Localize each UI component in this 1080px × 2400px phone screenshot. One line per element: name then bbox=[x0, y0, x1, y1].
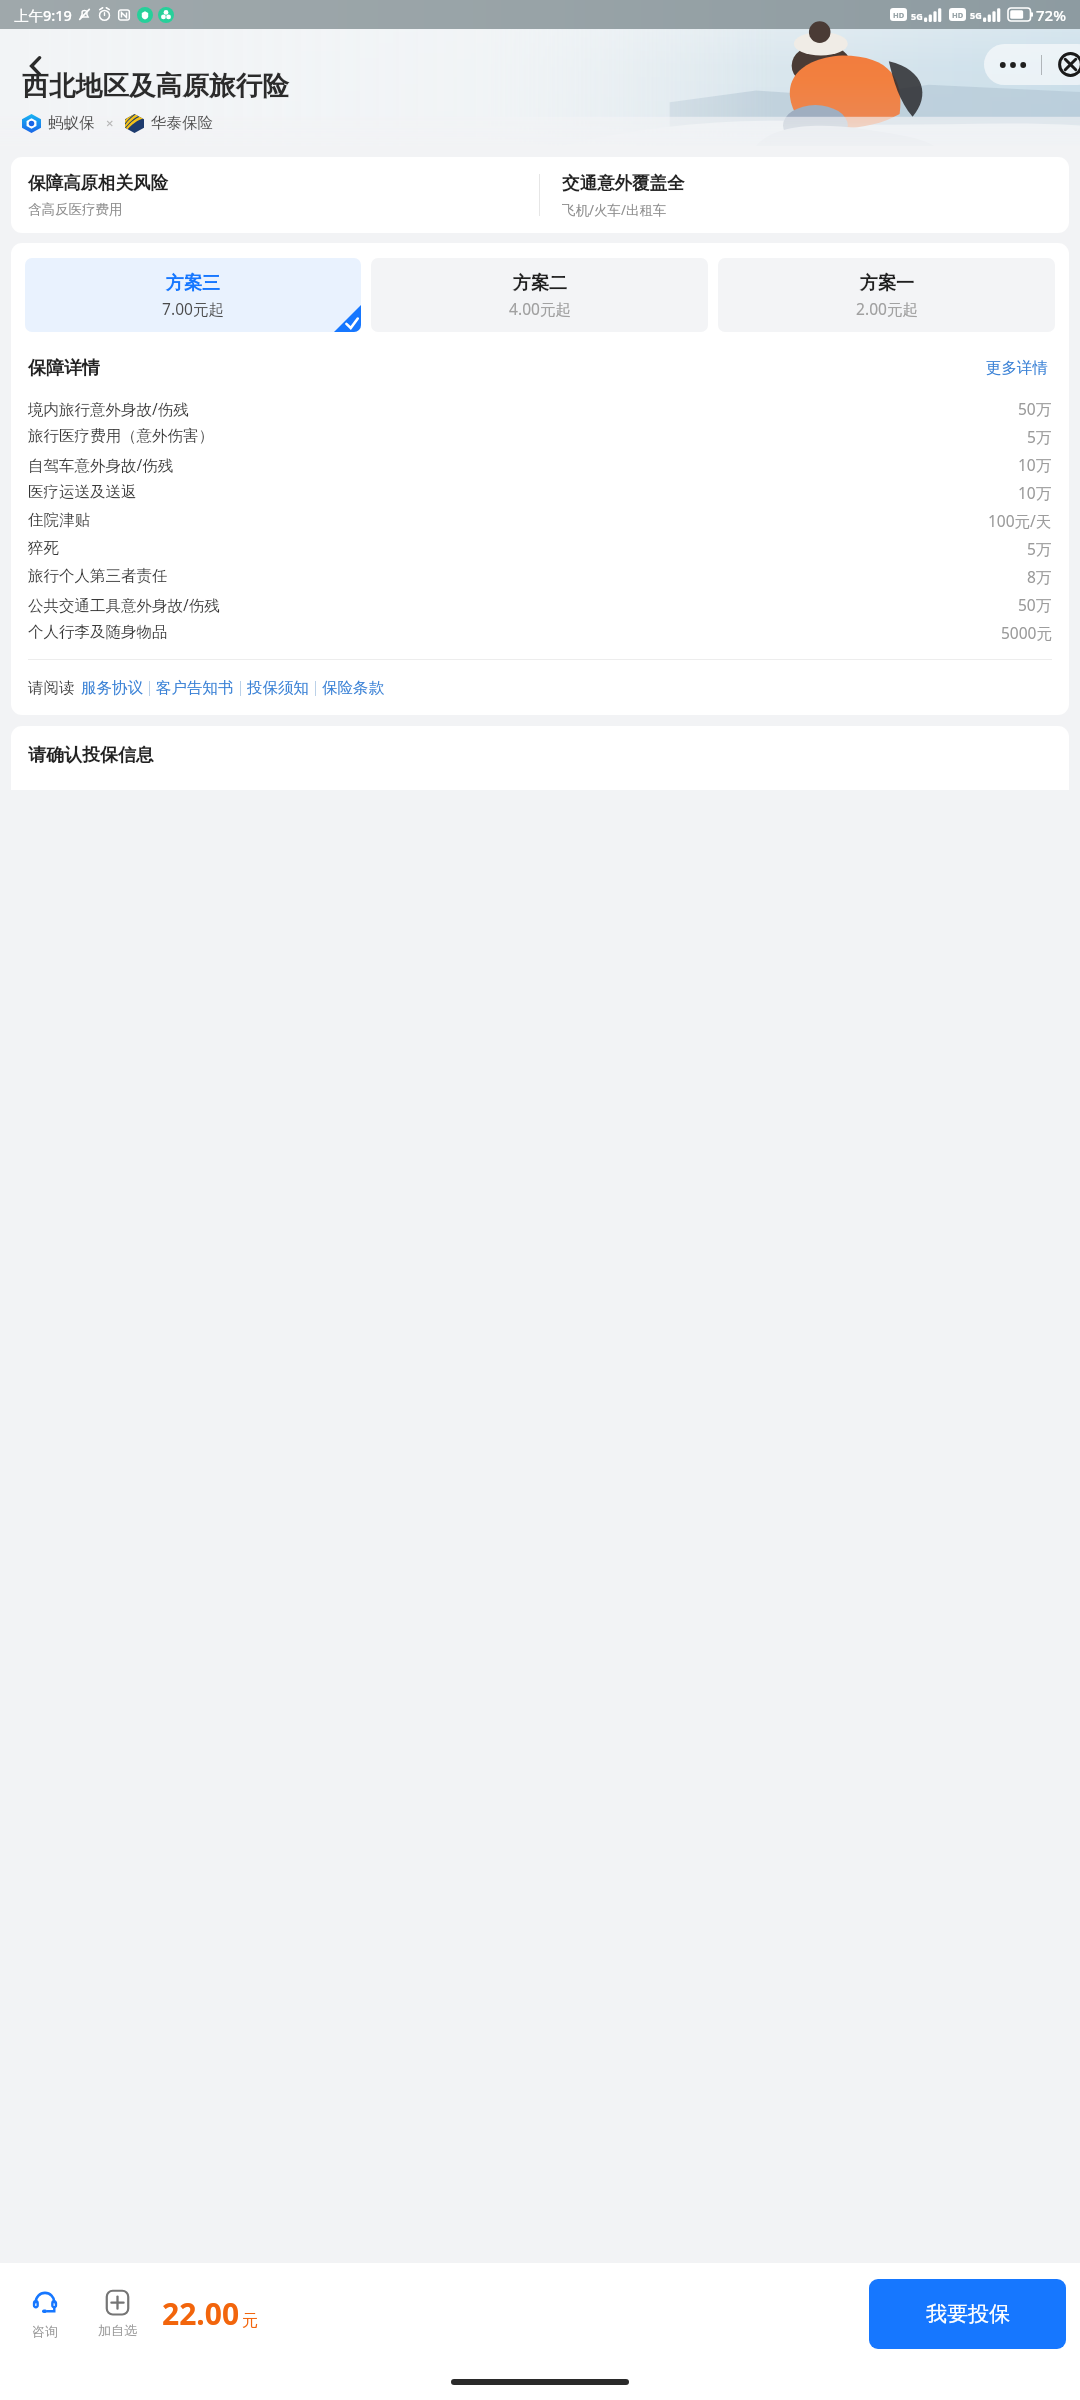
staticText: 交通意外覆盖全 bbox=[562, 172, 685, 194]
staticText: 医疗运送及送返 bbox=[28, 482, 137, 502]
button[interactable]: 方案三 bbox=[25, 258, 361, 332]
staticText: 方案二 bbox=[513, 272, 567, 295]
staticText: 住院津贴 bbox=[28, 510, 90, 530]
staticText: 保障详情 bbox=[28, 357, 100, 380]
staticText: 客户告知书 bbox=[156, 678, 234, 698]
button[interactable]: Close bbox=[1042, 44, 1080, 85]
staticText: 上午9:19 bbox=[14, 5, 72, 25]
staticText: 5G bbox=[970, 9, 982, 21]
staticText: 旅行医疗费用（意外伤害） bbox=[28, 426, 214, 446]
staticText: 华泰保险 bbox=[151, 113, 213, 133]
button[interactable]: 我要投保 bbox=[869, 2279, 1066, 2349]
button[interactable]: 客户告知书 bbox=[156, 678, 234, 698]
staticText: 4.00元起 bbox=[509, 298, 571, 319]
staticText: 蚂蚁保 bbox=[48, 113, 95, 133]
staticText: 我要投保 bbox=[926, 2301, 1010, 2327]
staticText: 10万 bbox=[1018, 454, 1052, 475]
staticText: 投保须知 bbox=[247, 678, 309, 698]
staticText: 50万 bbox=[1018, 594, 1052, 615]
button[interactable]: 旅行医疗费用（意外伤害） bbox=[28, 422, 1052, 450]
staticText: 境内旅行意外身故/伤残 bbox=[28, 398, 189, 419]
button[interactable]: 更多详情 bbox=[982, 354, 1052, 382]
staticText: 西北地区及高原旅行险 bbox=[22, 69, 289, 102]
staticText: 100元/天 bbox=[988, 510, 1052, 531]
staticText: 5万 bbox=[1027, 426, 1052, 447]
staticText: 含高反医疗费用 bbox=[28, 201, 123, 218]
staticText: 自驾车意外身故/伤残 bbox=[28, 454, 174, 475]
staticText: 22.00 bbox=[162, 2293, 240, 2334]
button[interactable]: 自驾车意外身故/伤残 bbox=[28, 450, 1052, 478]
button[interactable]: 保险条款 bbox=[322, 678, 384, 698]
staticText: 2.00元起 bbox=[856, 298, 918, 319]
button[interactable]: 咨询 bbox=[14, 2263, 76, 2364]
staticText: 元 bbox=[242, 2311, 258, 2331]
staticText: 方案三 bbox=[166, 272, 220, 295]
staticText: 咨询 bbox=[32, 2323, 58, 2339]
button[interactable]: More options bbox=[984, 44, 1041, 85]
staticText: 72% bbox=[1036, 5, 1066, 25]
staticText: 个人行李及随身物品 bbox=[28, 622, 168, 642]
staticText: 7.00元起 bbox=[162, 298, 224, 319]
staticText: × bbox=[106, 114, 114, 132]
button[interactable]: 加自选 bbox=[86, 2263, 148, 2364]
button[interactable]: 境内旅行意外身故/伤残 bbox=[28, 394, 1052, 422]
staticText: HD bbox=[952, 10, 964, 20]
staticText: 请确认投保信息 bbox=[28, 744, 154, 767]
button[interactable]: 方案一 bbox=[718, 258, 1055, 332]
staticText: 加自选 bbox=[98, 2322, 137, 2338]
button[interactable]: 公共交通工具意外身故/伤残 bbox=[28, 590, 1052, 618]
staticText: 请阅读 bbox=[28, 678, 75, 698]
button[interactable]: 旅行个人第三者责任 bbox=[28, 562, 1052, 590]
staticText: 5万 bbox=[1027, 538, 1052, 559]
staticText: 5000元 bbox=[1001, 622, 1052, 643]
staticText: 50万 bbox=[1018, 398, 1052, 419]
staticText: 8万 bbox=[1027, 566, 1052, 587]
staticText: 更多详情 bbox=[986, 358, 1048, 378]
button[interactable]: 投保须知 bbox=[247, 678, 309, 698]
staticText: 猝死 bbox=[28, 538, 59, 558]
staticText: 保险条款 bbox=[322, 678, 384, 698]
staticText: 公共交通工具意外身故/伤残 bbox=[28, 594, 220, 615]
button[interactable]: 方案二 bbox=[371, 258, 708, 332]
staticText: 保障高原相关风险 bbox=[28, 172, 168, 194]
button[interactable]: 个人行李及随身物品 bbox=[28, 618, 1052, 646]
button[interactable]: 医疗运送及送返 bbox=[28, 478, 1052, 506]
staticText: 5G bbox=[911, 10, 923, 22]
staticText: 旅行个人第三者责任 bbox=[28, 566, 168, 586]
button[interactable]: 住院津贴 bbox=[28, 506, 1052, 534]
button[interactable]: Back bbox=[14, 44, 58, 88]
button[interactable]: 猝死 bbox=[28, 534, 1052, 562]
staticText: 10万 bbox=[1018, 482, 1052, 503]
button[interactable]: 服务协议 bbox=[81, 678, 143, 698]
staticText: 飞机/火车/出租车 bbox=[562, 201, 667, 219]
staticText: 服务协议 bbox=[81, 678, 143, 698]
staticText: HD bbox=[893, 10, 905, 20]
staticText: 方案一 bbox=[860, 272, 914, 295]
